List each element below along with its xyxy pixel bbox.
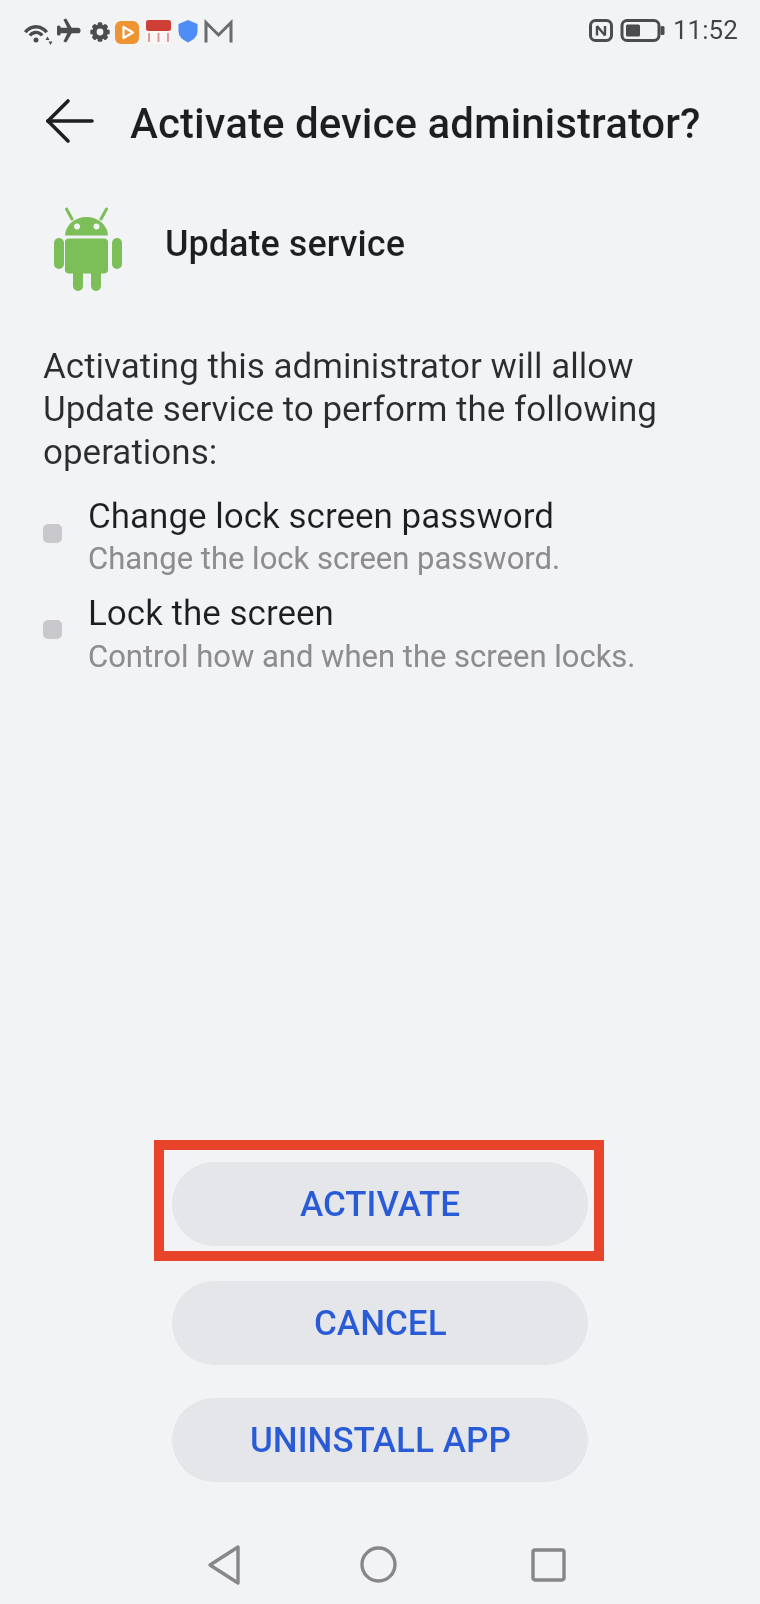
- staticText: 11:52: [673, 15, 738, 45]
- button[interactable]: CANCEL: [172, 1281, 588, 1365]
- staticText: Activate device administrator?: [130, 99, 701, 148]
- staticText: CANCEL: [314, 1303, 447, 1344]
- button[interactable]: [500, 1535, 580, 1595]
- button[interactable]: UNINSTALL APP: [172, 1398, 588, 1482]
- staticText: Update service: [165, 223, 405, 265]
- button[interactable]: ACTIVATE: [172, 1162, 588, 1246]
- staticText: UNINSTALL APP: [250, 1420, 511, 1461]
- staticText: Lock the screen: [88, 593, 334, 634]
- staticText: ACTIVATE: [300, 1184, 461, 1225]
- button[interactable]: [185, 1535, 265, 1595]
- staticText: Control how and when the screen locks.: [88, 638, 636, 674]
- button[interactable]: [340, 1535, 420, 1595]
- button[interactable]: [36, 95, 102, 153]
- staticText: Activating this administrator will allow…: [43, 346, 657, 472]
- staticText: Change lock screen password: [88, 496, 554, 537]
- staticText: Change the lock screen password.: [88, 540, 561, 576]
